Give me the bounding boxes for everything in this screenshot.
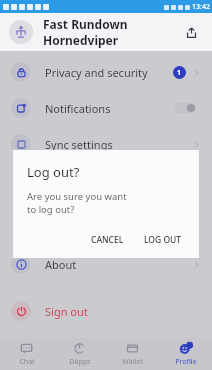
- button[interactable]: CANCEL: [84, 230, 131, 250]
- staticText: Chat: [19, 357, 35, 367]
- staticText: About: [45, 257, 192, 272]
- staticText: Log out?: [27, 163, 80, 181]
- button[interactable]: Chat: [0, 338, 53, 370]
- staticText: Fast Rundown: [43, 16, 128, 32]
- staticText: Sync settings: [45, 137, 192, 152]
- staticText: 13:42: [192, 2, 210, 12]
- button[interactable]: Sign out: [0, 294, 212, 328]
- button[interactable]: Notifications: [0, 90, 212, 126]
- button[interactable]: LOG OUT: [137, 230, 189, 250]
- staticText: 1: [177, 68, 182, 78]
- staticText: CANCEL: [91, 234, 124, 246]
- button[interactable]: Share: [179, 20, 203, 44]
- staticText: Sign out: [45, 304, 88, 319]
- staticText: LOG OUT: [144, 234, 182, 246]
- staticText: Hornedviper: [43, 32, 119, 48]
- staticText: Privacy and security: [45, 65, 173, 80]
- staticText: Profile: [175, 357, 197, 367]
- button[interactable]: DApps: [53, 338, 106, 370]
- button[interactable]: Sync settings: [0, 126, 212, 162]
- staticText: Are you sure you want to log out?: [27, 190, 127, 216]
- staticText: Wallet: [122, 357, 143, 367]
- staticText: Notifications: [45, 101, 174, 116]
- button[interactable]: Wallet: [106, 338, 159, 370]
- button[interactable]: Profile: [159, 338, 212, 370]
- staticText: DApps: [69, 357, 91, 367]
- button[interactable]: About: [0, 246, 212, 282]
- button[interactable]: Privacy and security: [0, 54, 212, 90]
